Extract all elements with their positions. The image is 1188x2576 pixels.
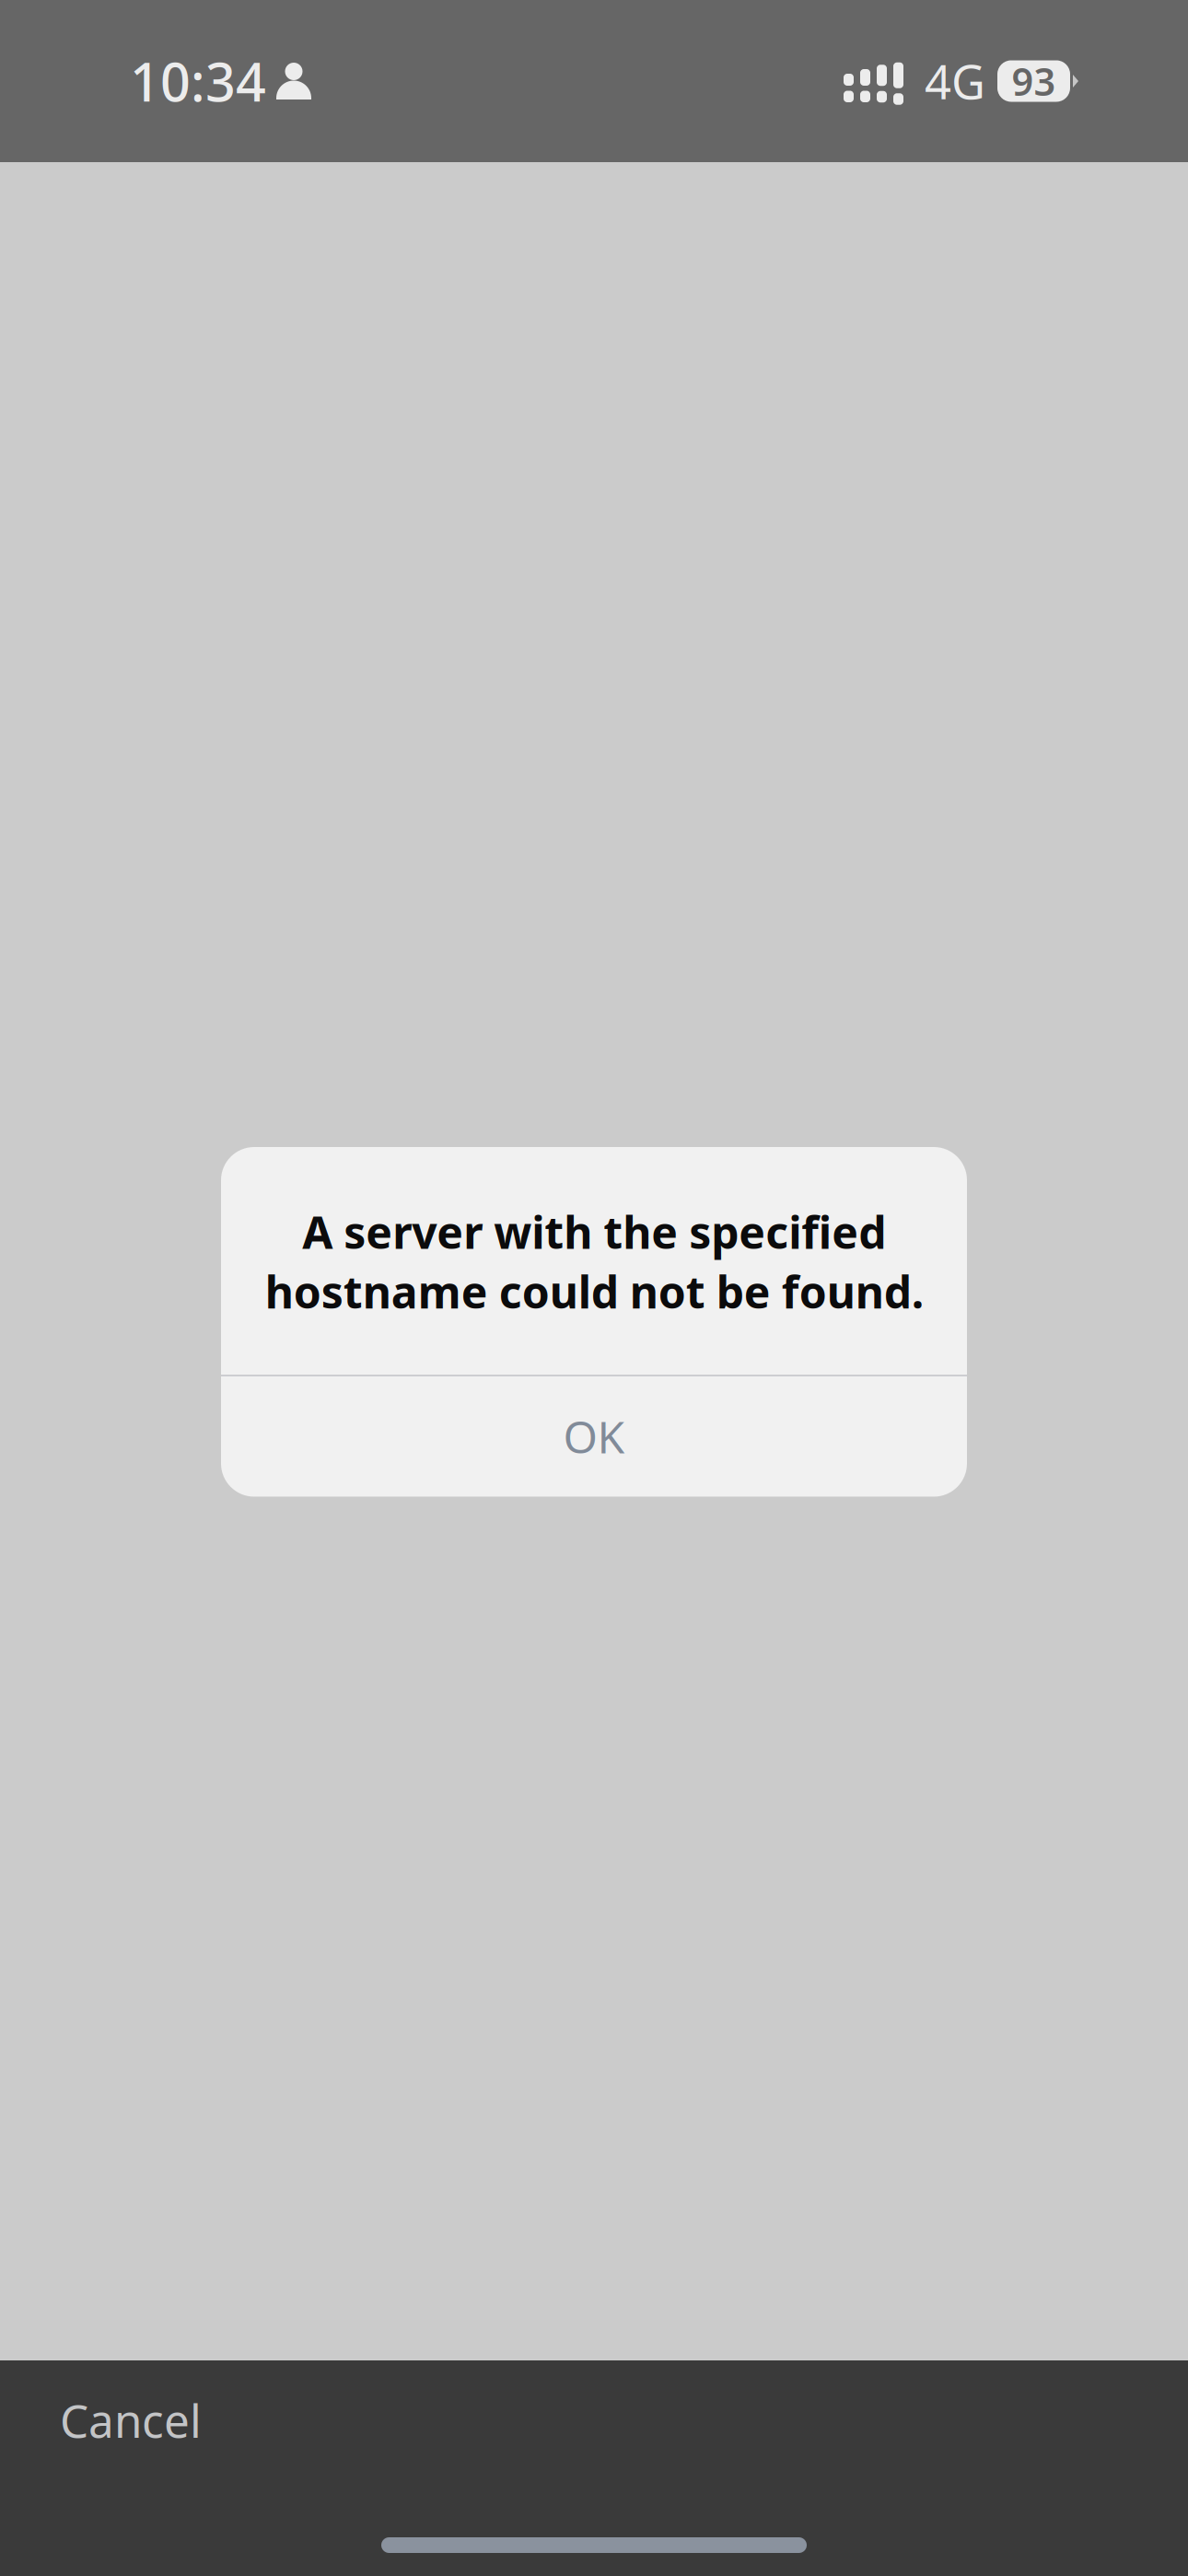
staticText: 4G (925, 50, 985, 112)
staticText: OK (563, 1407, 625, 1466)
staticText: A server with the specified (302, 1202, 886, 1261)
staticText: 10:34 (130, 46, 266, 116)
staticText: Cancel (60, 2390, 202, 2450)
staticText: hostname could not be found. (265, 1262, 923, 1321)
staticText: 93 (1012, 56, 1056, 106)
button[interactable]: OK (221, 1376, 967, 1497)
button[interactable]: Cancel (0, 2360, 1188, 2445)
